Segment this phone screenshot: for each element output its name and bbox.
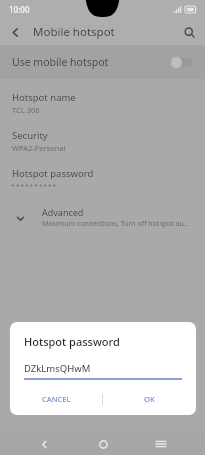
staticText: Hotspot password — [24, 334, 120, 349]
staticText: 10:00 — [9, 4, 30, 15]
staticText: Maximum connections, Turn off hotspot au… — [42, 219, 188, 229]
staticText: Advanced — [42, 206, 84, 218]
staticText: Security — [12, 129, 48, 142]
staticText: OK — [144, 394, 155, 404]
staticText: Hotspot password — [12, 167, 94, 180]
button[interactable]: OK — [103, 387, 196, 411]
button[interactable]: Use mobile hotspot — [0, 45, 205, 79]
button[interactable]: Search — [178, 21, 200, 43]
staticText: WPA2-Personal — [12, 143, 66, 153]
staticText: CANCEL — [42, 394, 71, 404]
staticText: Hotspot name — [12, 91, 76, 104]
staticText: DZkLmsQHwM — [24, 362, 91, 375]
button[interactable]: Hotspot password — [0, 165, 205, 190]
button[interactable]: Home — [88, 433, 118, 455]
button[interactable]: CANCEL — [10, 387, 102, 411]
button[interactable]: Advanced — [0, 198, 205, 237]
button[interactable]: Security — [0, 127, 205, 155]
button[interactable]: Recent apps — [146, 433, 176, 455]
staticText: Use mobile hotspot — [12, 55, 109, 69]
button[interactable]: Hotspot name — [0, 89, 205, 117]
staticText: TCL 306 — [12, 105, 40, 115]
button[interactable]: Back — [4, 21, 26, 43]
button[interactable]: Back — [29, 433, 59, 455]
staticText: Mobile hotspot — [33, 24, 115, 40]
